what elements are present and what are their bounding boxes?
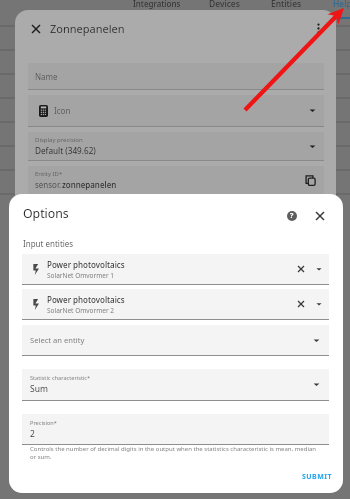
staticText: Input entities	[23, 238, 74, 249]
button[interactable]: Icon	[28, 95, 324, 126]
button[interactable]: Name	[28, 63, 324, 89]
staticText: Display precision	[35, 136, 83, 144]
button[interactable]: Power photovoltaics	[22, 289, 329, 319]
staticText: Options	[23, 205, 69, 222]
button[interactable]: Devices	[209, 0, 240, 10]
button[interactable]: Close	[26, 19, 45, 38]
button[interactable]: Clear	[293, 261, 309, 277]
staticText: zonnepanelen	[62, 179, 117, 190]
staticText: Default (349.62)	[35, 145, 96, 156]
staticText: Entity ID*	[35, 170, 63, 178]
button[interactable]: Statistic characteristic*	[22, 369, 329, 400]
staticText: Precision*	[30, 419, 57, 427]
staticText: Zonnepanelen	[50, 21, 125, 36]
staticText: Statistic characteristic*	[30, 374, 91, 382]
staticText: SolarNet Omvormer 2	[47, 306, 115, 315]
staticText: SUBMIT	[302, 472, 332, 482]
staticText: Sum	[30, 383, 48, 395]
staticText: SolarNet Omvormer 1	[47, 271, 115, 280]
button[interactable]: Close	[309, 205, 331, 227]
staticText: Help	[333, 0, 350, 10]
button[interactable]: Integrations	[133, 0, 181, 9]
button[interactable]: SUBMIT	[297, 468, 337, 486]
button[interactable]: Display precision	[28, 132, 324, 160]
staticText: Entities	[271, 0, 302, 10]
button[interactable]: Entities	[271, 0, 302, 10]
staticText: Icon	[54, 105, 71, 116]
button[interactable]: Copy entity id	[302, 172, 318, 188]
button[interactable]: Help	[333, 0, 350, 10]
button[interactable]: Precision*	[22, 414, 329, 444]
staticText: Power photovoltaics	[47, 294, 125, 305]
staticText: 2	[30, 428, 35, 440]
staticText: Power photovoltaics	[47, 259, 125, 270]
button[interactable]: More options	[309, 19, 328, 38]
button[interactable]: Select an entity	[22, 325, 329, 355]
button[interactable]: Zonnepanelen	[50, 21, 125, 36]
staticText: Select an entity	[30, 335, 85, 345]
staticText: Controls the number of decimal digits in…	[30, 445, 322, 460]
staticText: Devices	[209, 0, 240, 10]
button[interactable]: Power photovoltaics	[22, 254, 329, 284]
staticText: Integrations	[133, 0, 181, 9]
staticText: ?	[290, 211, 294, 221]
button[interactable]: Clear	[293, 296, 309, 312]
staticText: sensor.	[35, 179, 62, 190]
staticText: Name	[35, 71, 58, 82]
button[interactable]: Help	[281, 205, 303, 227]
